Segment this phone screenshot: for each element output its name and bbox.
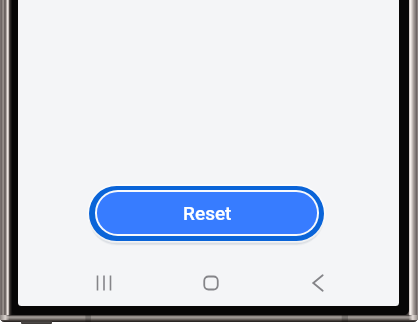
- button[interactable]: Reset: [89, 186, 324, 241]
- button[interactable]: Back: [264, 261, 371, 305]
- button[interactable]: Recent apps: [50, 261, 157, 305]
- button[interactable]: Home: [157, 261, 264, 305]
- staticText: Reset: [183, 202, 232, 224]
